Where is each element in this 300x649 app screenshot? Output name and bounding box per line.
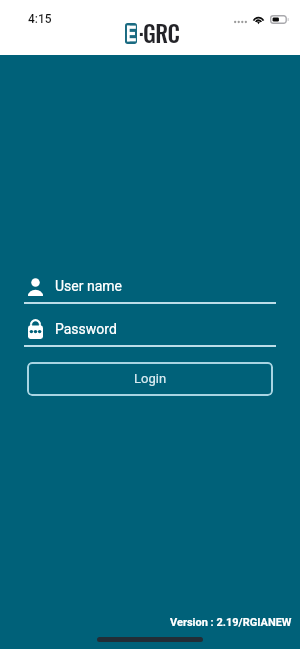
staticText: ·GRC xyxy=(139,16,180,50)
staticText: Version : 2.19/RGIANEW xyxy=(170,616,292,629)
button[interactable]: Login xyxy=(27,362,273,396)
staticText: Password xyxy=(55,321,117,337)
staticText: User name xyxy=(55,278,122,294)
button[interactable]: User name xyxy=(24,277,276,304)
staticText: 4:15 xyxy=(28,12,52,26)
button[interactable]: Password xyxy=(24,320,276,347)
staticText: Login xyxy=(134,371,167,386)
